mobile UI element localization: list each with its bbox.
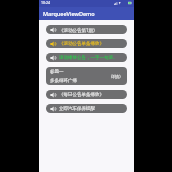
staticText: MarqueeViewDemo — [43, 10, 95, 17]
other: Play marquee — [50, 106, 56, 112]
button[interactable]: Play marquee — [46, 39, 127, 48]
button[interactable]: 标题一 — [46, 67, 127, 85]
other: Play marquee — [50, 92, 56, 98]
staticText: 详情》 — [111, 74, 123, 79]
staticText: 《滚动公告第1期》 — [59, 27, 98, 33]
other: Play marquee — [50, 27, 56, 33]
staticText: 多条循环广播 — [50, 78, 77, 84]
staticText: 《每日公告单条播放》 — [59, 92, 104, 98]
button[interactable]: Play marquee — [46, 90, 127, 99]
staticText: 立即汽车保养提醒 — [59, 106, 95, 112]
button[interactable]: Play marquee — [46, 104, 127, 113]
button[interactable]: Play marquee — [46, 53, 127, 62]
staticText: 滚动播放公告，一字一句滚。 — [59, 55, 118, 61]
button[interactable]: Play marquee — [46, 25, 127, 34]
staticText: 标题一 — [50, 69, 64, 75]
other: Play marquee — [50, 55, 56, 61]
other: Play marquee — [50, 41, 56, 47]
staticText: 《滚动公告单条播放》 — [59, 41, 104, 47]
staticText: 10:24 — [41, 0, 50, 5]
